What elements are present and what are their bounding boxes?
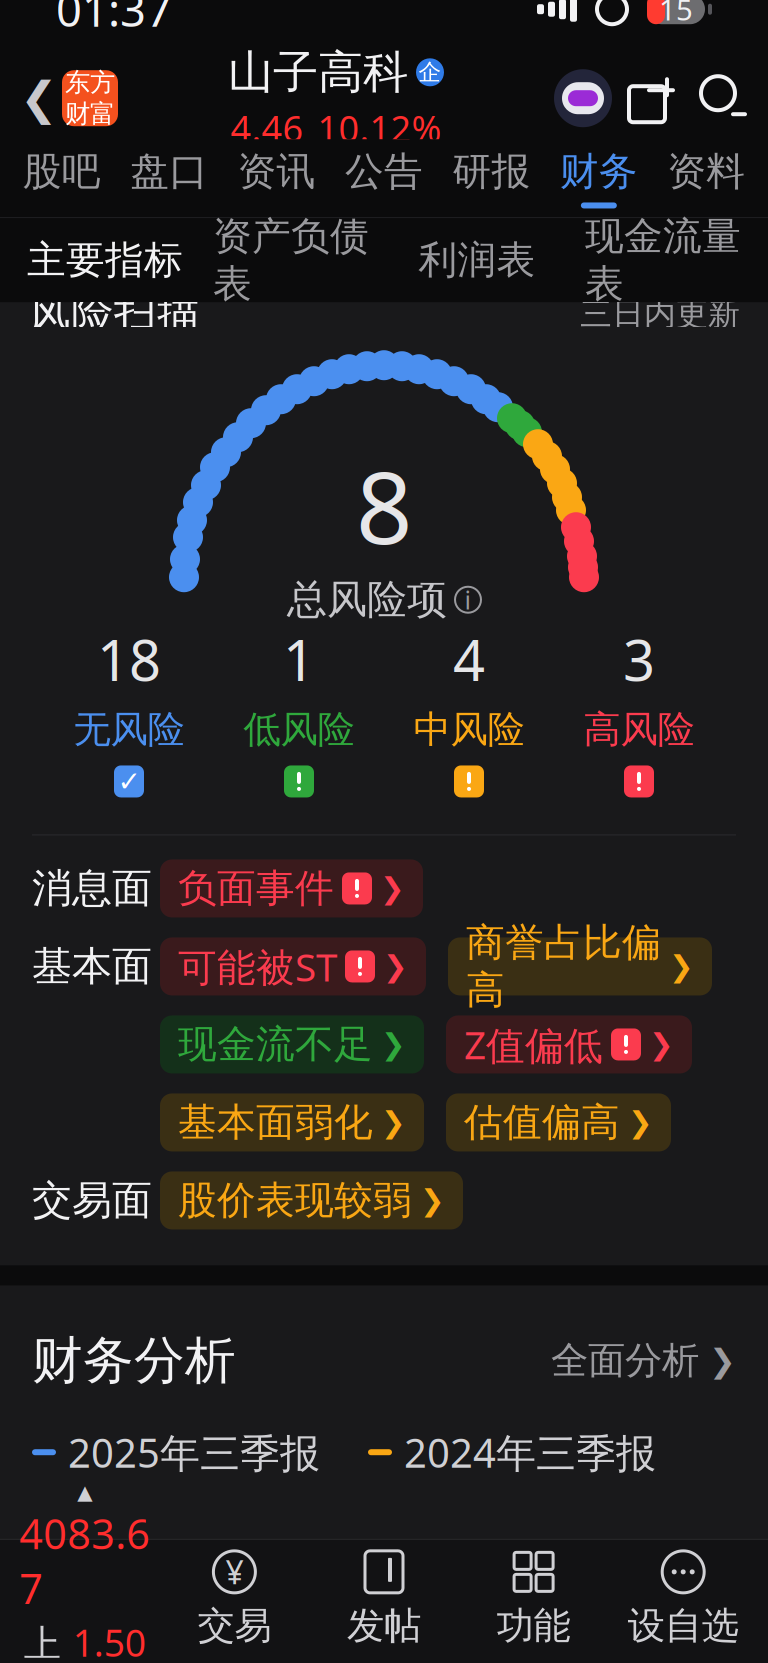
staticText: 现金流量表 (585, 213, 741, 308)
staticText: 发帖 (347, 1603, 421, 1649)
staticText: 中风险 (413, 707, 524, 752)
staticText: 财务 (560, 148, 638, 195)
staticText: 消息面 (32, 864, 152, 913)
button[interactable]: 股价表现较弱 (160, 1171, 463, 1229)
button[interactable]: AI 助手 (554, 69, 612, 127)
button[interactable]: 负面事件 (160, 859, 423, 917)
staticText: ❯ (669, 950, 694, 983)
button[interactable]: 主要指标 (12, 218, 198, 302)
staticText: 8 (356, 440, 412, 571)
staticText: 资产负债表 (213, 213, 369, 308)
staticText: 风险扫描 (28, 288, 200, 340)
button[interactable]: 资料 (653, 139, 760, 217)
button[interactable]: Z值偏低 (446, 1015, 692, 1073)
staticText: 1.50% (73, 1617, 146, 1663)
staticText: 公告 (345, 148, 423, 195)
staticText: 资讯 (238, 148, 316, 195)
staticText: 资料 (667, 148, 745, 195)
staticText: 上证 (24, 1621, 61, 1663)
staticText: ❯ (380, 872, 405, 905)
staticText: 总风险项 (287, 575, 447, 624)
staticText: ❮ (20, 72, 58, 124)
staticText: ▲ (77, 1481, 92, 1504)
staticText: 2024年三季报 (404, 1426, 656, 1479)
staticText: 负面事件 (178, 865, 334, 912)
staticText: ❯ (649, 1028, 674, 1061)
button[interactable]: 股吧 (8, 139, 115, 217)
button[interactable]: 研报 (438, 139, 545, 217)
button[interactable]: 全面分析 (551, 1338, 736, 1383)
staticText: ✓ (117, 765, 140, 797)
staticText: 山子高科 (228, 44, 408, 100)
button[interactable]: 发帖 (309, 1549, 459, 1649)
button[interactable]: 功能 (459, 1549, 608, 1649)
staticText: 4.46 (230, 104, 303, 152)
staticText: 01:37 (56, 0, 172, 39)
button[interactable]: 公告 (330, 139, 438, 217)
staticText: 无风险 (73, 707, 184, 752)
button[interactable]: 现金流不足 (160, 1015, 424, 1073)
staticText: 利润表 (418, 236, 535, 284)
staticText: 18 (97, 622, 161, 697)
staticText: 企 (418, 58, 441, 86)
staticText: 估值偏高 (464, 1099, 620, 1146)
button[interactable]: 盘口 (115, 139, 223, 217)
staticText: Z值偏低 (464, 1019, 603, 1070)
staticText: 功能 (497, 1603, 571, 1649)
button[interactable]: 资讯 (223, 139, 330, 217)
staticText: 2025年三季报 (68, 1426, 320, 1479)
button[interactable]: ▲ (10, 1481, 160, 1663)
staticText: 低风险 (243, 707, 354, 752)
staticText: 股价表现较弱 (178, 1177, 412, 1224)
staticText: ❯ (628, 1106, 653, 1139)
staticText: 财务分析 (32, 1329, 236, 1392)
button[interactable]: ¥ (160, 1549, 309, 1649)
staticText: 东方 (65, 67, 115, 98)
staticText: ❯ (420, 1184, 445, 1217)
staticText: 4083.67 (19, 1506, 150, 1615)
staticText: 股吧 (23, 148, 101, 195)
staticText: 3 (623, 622, 655, 697)
staticText: 财富 (65, 98, 115, 129)
staticText: i (464, 583, 471, 616)
button[interactable]: 商誉占比偏高 (448, 937, 712, 995)
staticText: 4 (453, 622, 485, 697)
staticText: 交易 (197, 1603, 271, 1649)
staticText: ❯ (381, 1106, 406, 1139)
button[interactable]: 财务 (545, 139, 652, 217)
staticText: 1 (283, 622, 315, 697)
button[interactable]: 分享 (624, 69, 682, 127)
staticText: 研报 (452, 148, 530, 195)
staticText: ❯ (381, 1028, 406, 1061)
staticText: ¥ (225, 1551, 243, 1593)
button[interactable]: 利润表 (384, 218, 570, 302)
staticText: 基本面 (32, 942, 152, 991)
staticText: 现金流不足 (178, 1021, 373, 1068)
staticText: 商誉占比偏高 (466, 919, 661, 1014)
button[interactable]: 估值偏高 (446, 1093, 671, 1151)
button[interactable]: 返回 (16, 62, 62, 134)
staticText: 可能被ST (178, 941, 337, 992)
staticText: 高风险 (583, 707, 694, 752)
staticText: 10.12% (317, 104, 441, 152)
staticText: ❯ (383, 950, 408, 983)
button[interactable]: 基本面弱化 (160, 1093, 424, 1151)
staticText: 设自选 (628, 1603, 739, 1649)
staticText: 主要指标 (27, 236, 183, 284)
staticText: 盘口 (130, 148, 208, 195)
staticText: 基本面弱化 (178, 1099, 373, 1146)
staticText: 全面分析 (551, 1338, 699, 1383)
staticText: 三日内更新 (580, 295, 740, 334)
button[interactable]: 现金流量表 (570, 218, 756, 302)
button[interactable]: 设自选 (608, 1549, 758, 1649)
button[interactable]: 搜索 (694, 69, 752, 127)
staticText: 交易面 (32, 1176, 152, 1225)
staticText: ❯ (709, 1342, 736, 1379)
button[interactable]: 资产负债表 (198, 218, 384, 302)
button[interactable]: 东方财富 (62, 70, 118, 126)
staticText: 15 (659, 0, 693, 29)
button[interactable]: 可能被ST (160, 937, 426, 995)
